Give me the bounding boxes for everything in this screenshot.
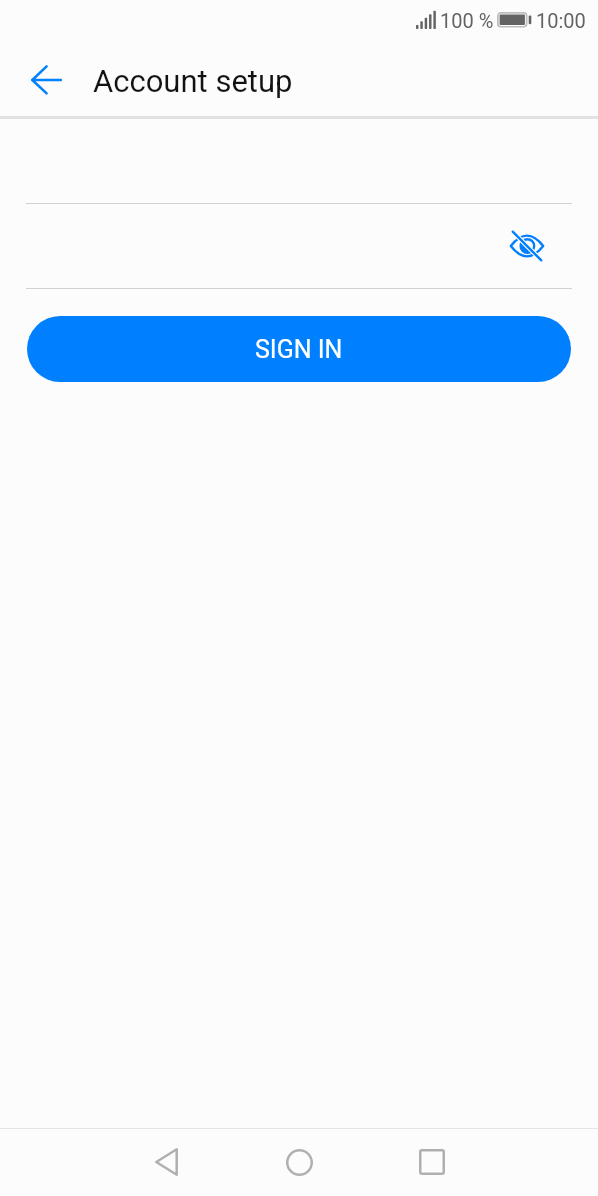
button[interactable]: Back (0, 39, 93, 116)
button[interactable] (26, 119, 572, 204)
button[interactable]: SIGN IN (27, 316, 571, 382)
staticText: 100 % (440, 9, 494, 32)
button[interactable]: Back (138, 1135, 194, 1191)
staticText: Account setup (93, 63, 293, 99)
button[interactable]: Home (271, 1135, 327, 1191)
button[interactable]: Show password (503, 222, 551, 270)
button[interactable]: Recent apps (404, 1135, 460, 1191)
staticText: SIGN IN (255, 335, 343, 364)
button[interactable]: Show password (26, 204, 572, 289)
staticText: 10:00 (536, 9, 586, 32)
